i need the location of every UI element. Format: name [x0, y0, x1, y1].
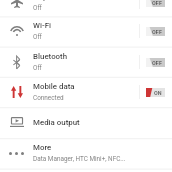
staticText: Off	[33, 33, 42, 41]
staticText: More	[33, 143, 52, 152]
button[interactable]: Bluetooth	[0, 47, 172, 77]
button[interactable]: Turn off	[146, 88, 165, 97]
button[interactable]: Turn on	[146, 27, 165, 36]
staticText: Wi-Fi	[33, 21, 51, 30]
button[interactable]: Media output	[0, 107, 172, 137]
staticText: Off	[33, 4, 42, 12]
staticText: Off	[33, 64, 42, 72]
staticText: ON	[154, 90, 162, 96]
staticText: Data Manager, HTC Mini+, NFC...	[33, 155, 126, 163]
button[interactable]: Wi-Fi	[0, 16, 172, 46]
staticText: Airplane mode	[33, 0, 85, 1]
staticText: Mobile data	[33, 82, 75, 91]
button[interactable]: Airplane mode	[0, 0, 172, 17]
button[interactable]: Turn on	[146, 0, 165, 7]
staticText: Connected	[33, 94, 64, 102]
staticText: OFF	[152, 60, 163, 66]
button[interactable]: Mobile data	[0, 77, 172, 107]
button[interactable]: Turn on	[146, 58, 165, 67]
button[interactable]: More	[0, 138, 172, 168]
staticText: OFF	[152, 0, 163, 6]
staticText: Bluetooth	[33, 52, 68, 61]
staticText: Media output	[33, 118, 80, 127]
staticText: OFF	[152, 29, 163, 35]
